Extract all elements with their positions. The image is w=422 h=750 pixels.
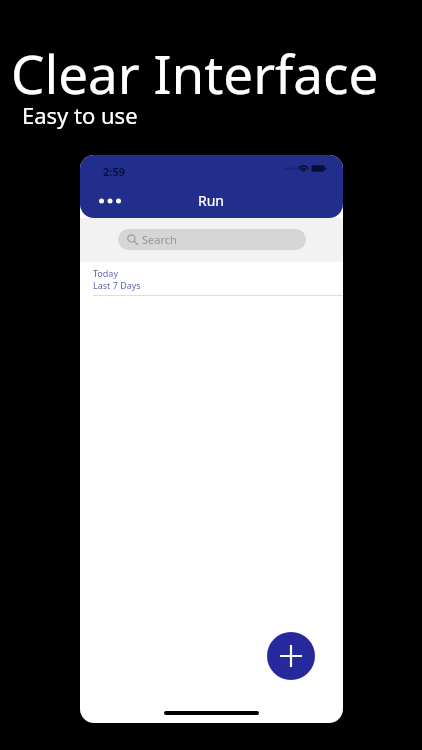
staticText: Clear Interface [11,37,379,109]
button[interactable]: Today [80,262,343,295]
staticText: Last 7 Days [93,279,141,291]
button[interactable]: Search [118,229,306,250]
button[interactable]: More options [93,186,127,216]
staticText: Today [93,267,118,279]
staticText: Run [198,191,225,210]
staticText: Easy to use [22,100,138,130]
staticText: Search [142,232,177,247]
staticText: 2:59 [103,164,125,179]
button[interactable]: Add [267,632,315,680]
